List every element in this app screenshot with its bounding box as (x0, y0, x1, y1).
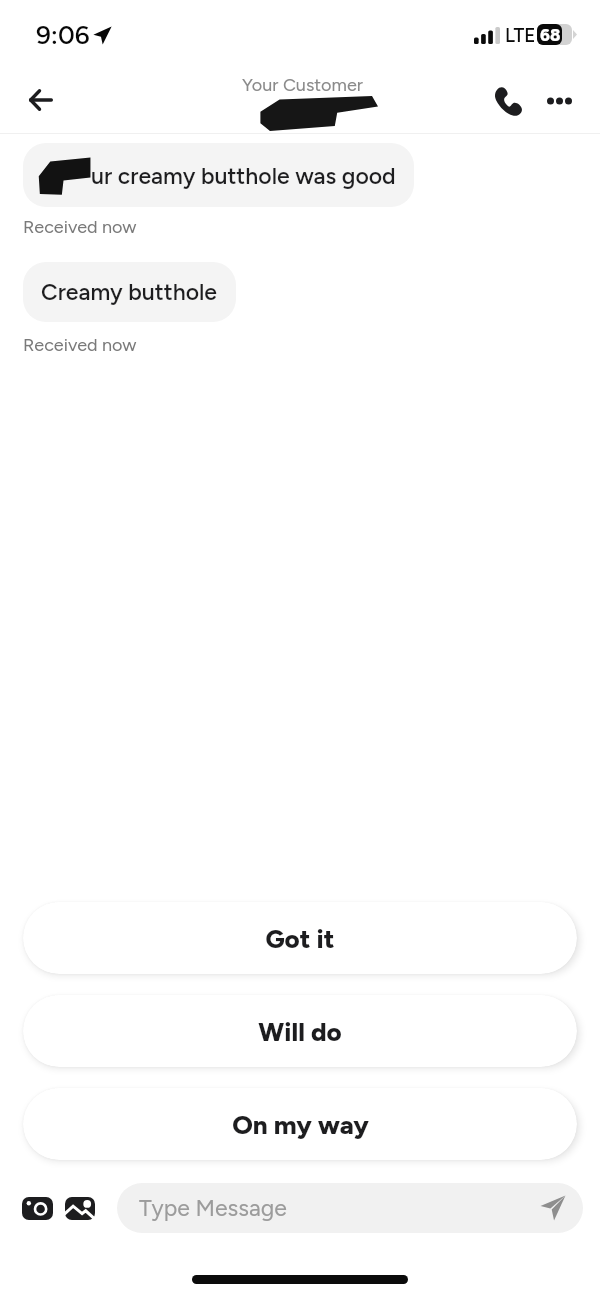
button[interactable]: Photo (56, 1185, 103, 1232)
button[interactable]: More options (535, 77, 583, 125)
staticText: ur creamy butthole was good (91, 162, 396, 190)
staticText: Got it (265, 923, 335, 954)
staticText: Received now (23, 216, 137, 238)
button[interactable]: Creamy butthole (23, 262, 236, 322)
button[interactable]: Back (17, 76, 64, 123)
button[interactable]: Call (484, 77, 532, 125)
staticText: LTE (505, 24, 536, 47)
button[interactable]: Send (535, 1190, 571, 1226)
button[interactable]: Camera (14, 1185, 61, 1232)
staticText: 9:06 (36, 19, 90, 50)
button[interactable]: On my way (23, 1088, 577, 1160)
button[interactable]: ur creamy butthole was good (23, 143, 414, 207)
staticText: On my way (232, 1109, 369, 1140)
staticText: Type Message (139, 1194, 287, 1222)
staticText: Creamy butthole (41, 278, 218, 306)
button[interactable]: Got it (23, 902, 577, 974)
staticText: 68 (540, 25, 561, 45)
staticText: Received now (23, 334, 137, 356)
staticText: Will do (258, 1016, 342, 1047)
button[interactable]: Type Message (117, 1183, 583, 1233)
staticText: Your Customer (242, 74, 363, 96)
button[interactable]: Will do (23, 995, 577, 1067)
